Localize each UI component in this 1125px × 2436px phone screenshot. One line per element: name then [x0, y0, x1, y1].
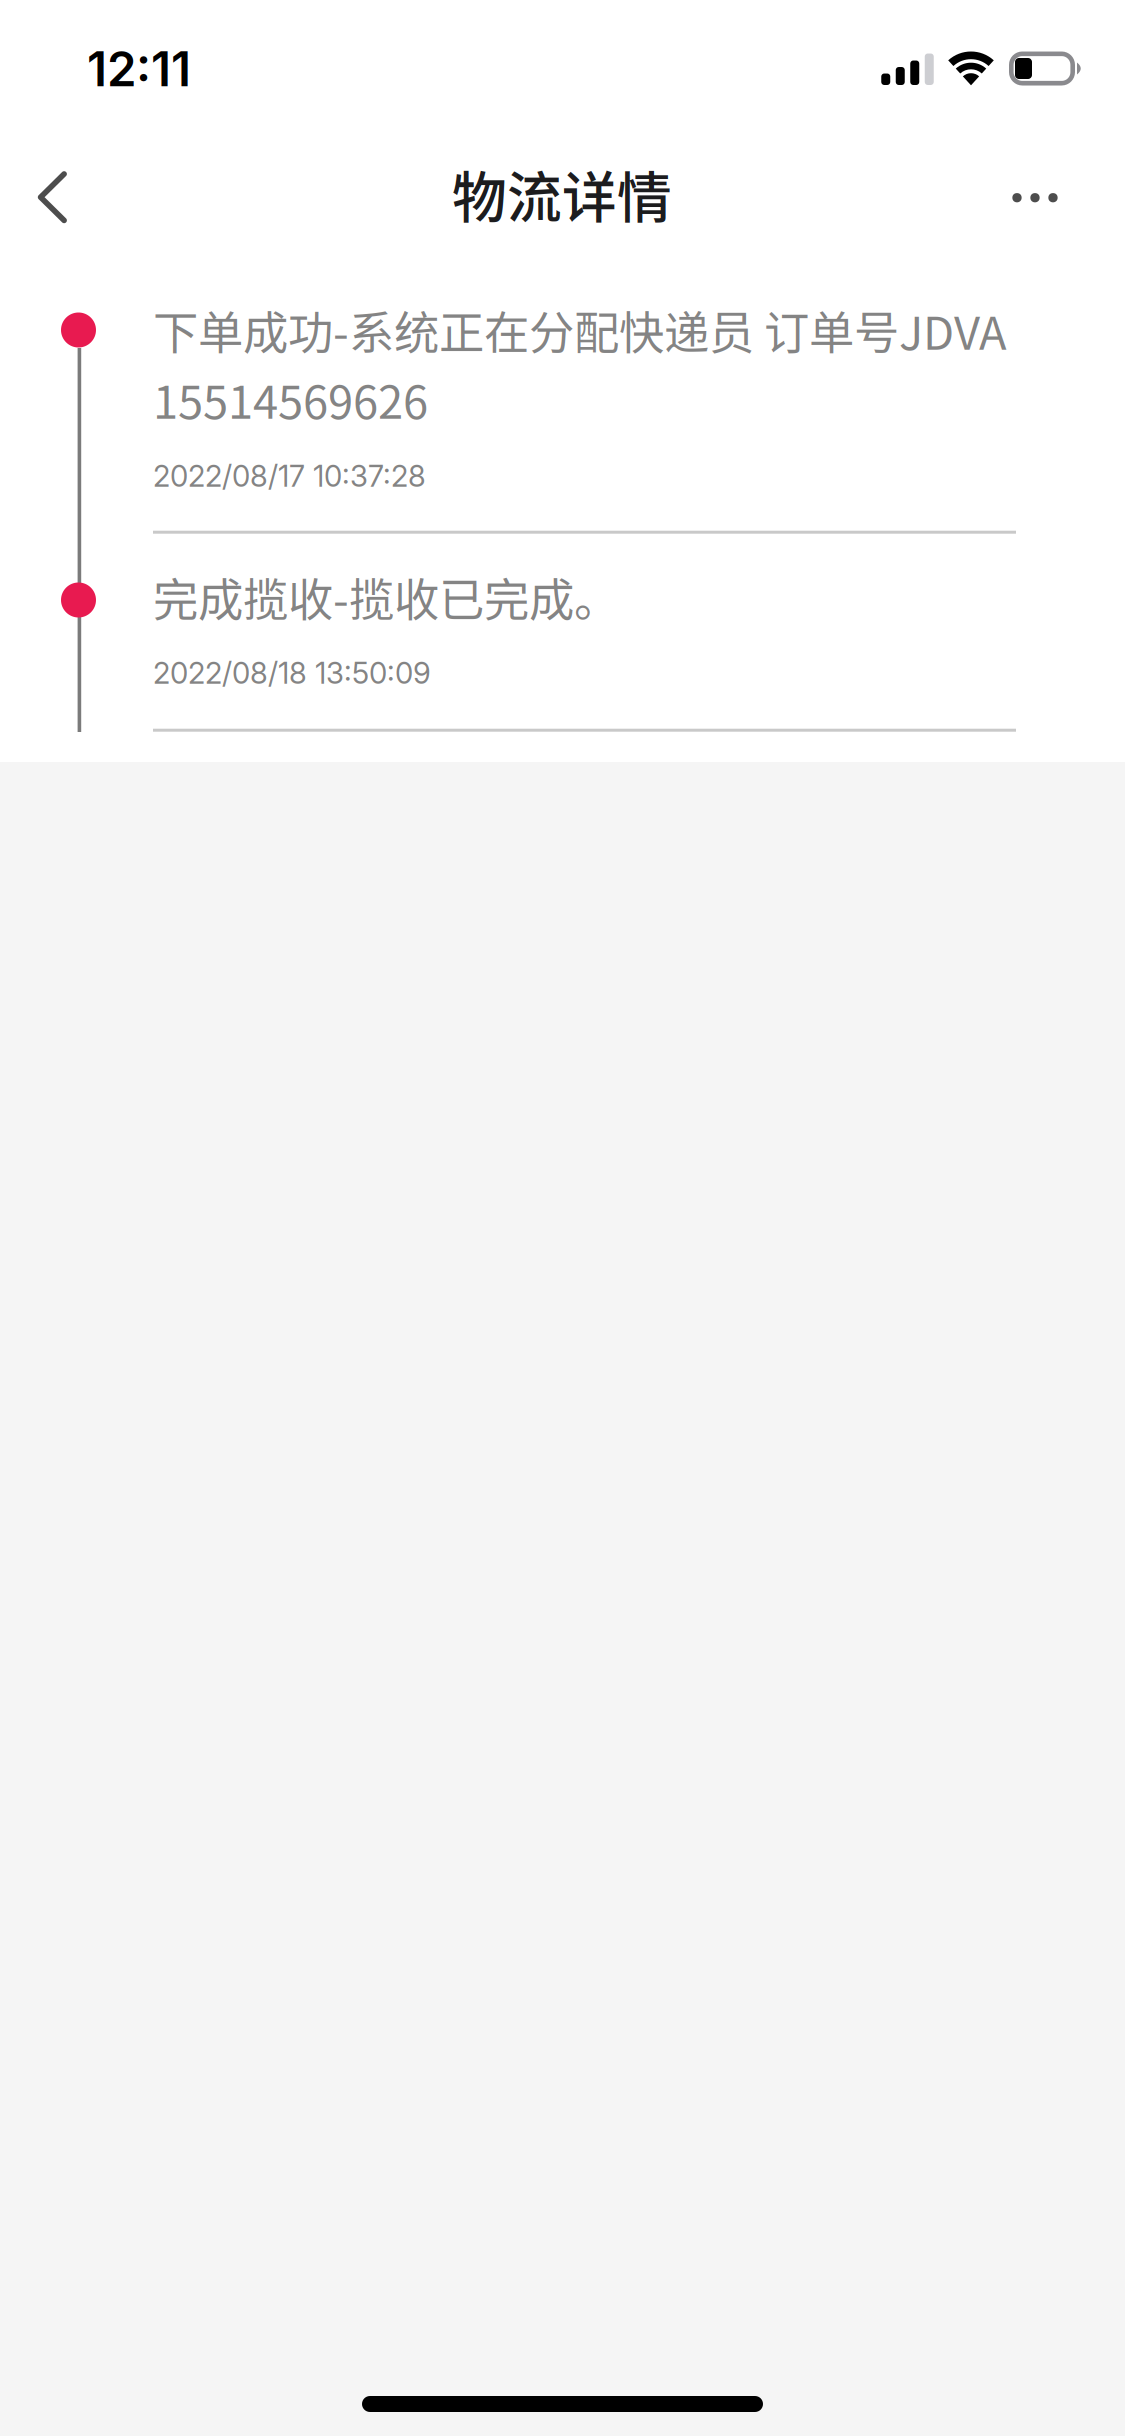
staticText: 物流详情	[452, 154, 672, 233]
staticText: 12:11	[87, 40, 191, 98]
staticText: 15514569626	[153, 366, 428, 432]
staticText: 下单成功-系统正在分配快递员 订单号JDVA	[153, 297, 1007, 363]
staticText: 2022/08/17 10:37:28	[153, 458, 426, 494]
button[interactable]: More options	[969, 142, 1101, 254]
staticText: 2022/08/18 13:50:09	[153, 655, 431, 691]
staticText: 完成揽收-揽收已完成。	[153, 564, 619, 630]
button[interactable]: Back	[0, 136, 117, 258]
